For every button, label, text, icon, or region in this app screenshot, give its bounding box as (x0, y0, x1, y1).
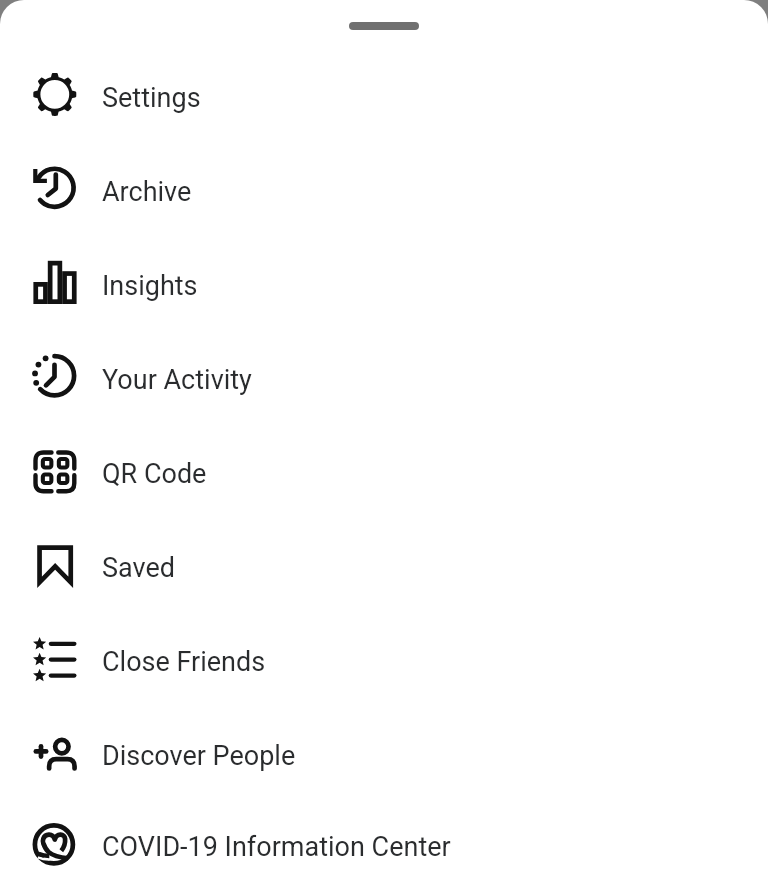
button[interactable]: Insights (0, 237, 768, 331)
staticText: Close Friends (102, 646, 266, 678)
staticText: Saved (102, 552, 175, 584)
button[interactable]: Close Friends (0, 613, 768, 707)
button[interactable]: Discover People (0, 707, 768, 801)
staticText: QR Code (102, 458, 207, 490)
button[interactable]: Your Activity (0, 331, 768, 425)
staticText: Insights (102, 270, 198, 302)
staticText: Archive (102, 176, 192, 208)
staticText: Your Activity (102, 364, 252, 396)
button[interactable]: Saved (0, 519, 768, 613)
staticText: Discover People (102, 740, 296, 772)
button[interactable]: Archive (0, 143, 768, 237)
button[interactable]: COVID-19 Information Center (0, 801, 768, 889)
button[interactable]: QR Code (0, 425, 768, 519)
button[interactable]: Settings (0, 49, 768, 143)
staticText: COVID-19 Information Center (102, 831, 451, 863)
staticText: Settings (102, 82, 201, 114)
